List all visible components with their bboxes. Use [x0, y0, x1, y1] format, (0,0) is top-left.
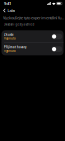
- button[interactable]: Přijímat hovory: [1, 43, 63, 55]
- button[interactable]: Labs: [0, 7, 17, 14]
- button[interactable]: Zkuste: [1, 30, 63, 43]
- staticText: Ovládání gesty a vzhled: [3, 23, 34, 26]
- staticText: Zkuste: [4, 33, 14, 36]
- staticText: Vyzkoušejte tyto experimentální funkce.: [3, 15, 64, 20]
- staticText: Přijímat hovory: [4, 45, 26, 49]
- staticText: Vypnuto: [4, 37, 16, 40]
- staticText: Vypnuto: [4, 49, 16, 53]
- staticText: 9:41: [4, 1, 11, 6]
- staticText: Labs: [7, 8, 15, 13]
